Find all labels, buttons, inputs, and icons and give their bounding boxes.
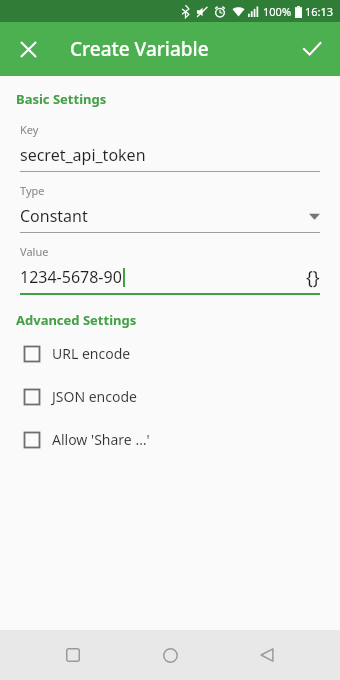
button[interactable]: Allow 'Share …' [24,430,324,449]
button[interactable]: Insert variable [306,265,320,290]
staticText: 16:13 [305,4,334,19]
staticText: 100% [263,4,292,19]
button[interactable]: Home [146,631,194,679]
staticText: secret_api_token [20,144,146,166]
staticText: URL encode [52,344,131,363]
button[interactable]: Constant [20,203,320,233]
button[interactable]: Save [292,29,332,69]
button[interactable]: Recents [49,631,97,679]
button[interactable]: JSON encode [24,387,324,406]
staticText: Type [20,183,45,198]
button[interactable]: secret_api_token [20,142,320,172]
staticText: Key [20,122,39,137]
staticText: 1234-5678-90 [20,266,122,288]
staticText: Create Variable [70,36,209,62]
staticText: Value [20,244,49,259]
button[interactable]: URL encode [24,344,324,363]
staticText: Basic Settings [16,90,107,108]
staticText: Constant [20,205,88,227]
staticText: {} [306,265,320,290]
staticText: Allow 'Share …' [52,430,150,449]
staticText: JSON encode [52,387,137,406]
button[interactable]: Back [243,631,291,679]
button[interactable]: Close [8,29,48,69]
button[interactable]: 1234-5678-90 [20,264,320,295]
staticText: Advanced Settings [16,311,137,329]
